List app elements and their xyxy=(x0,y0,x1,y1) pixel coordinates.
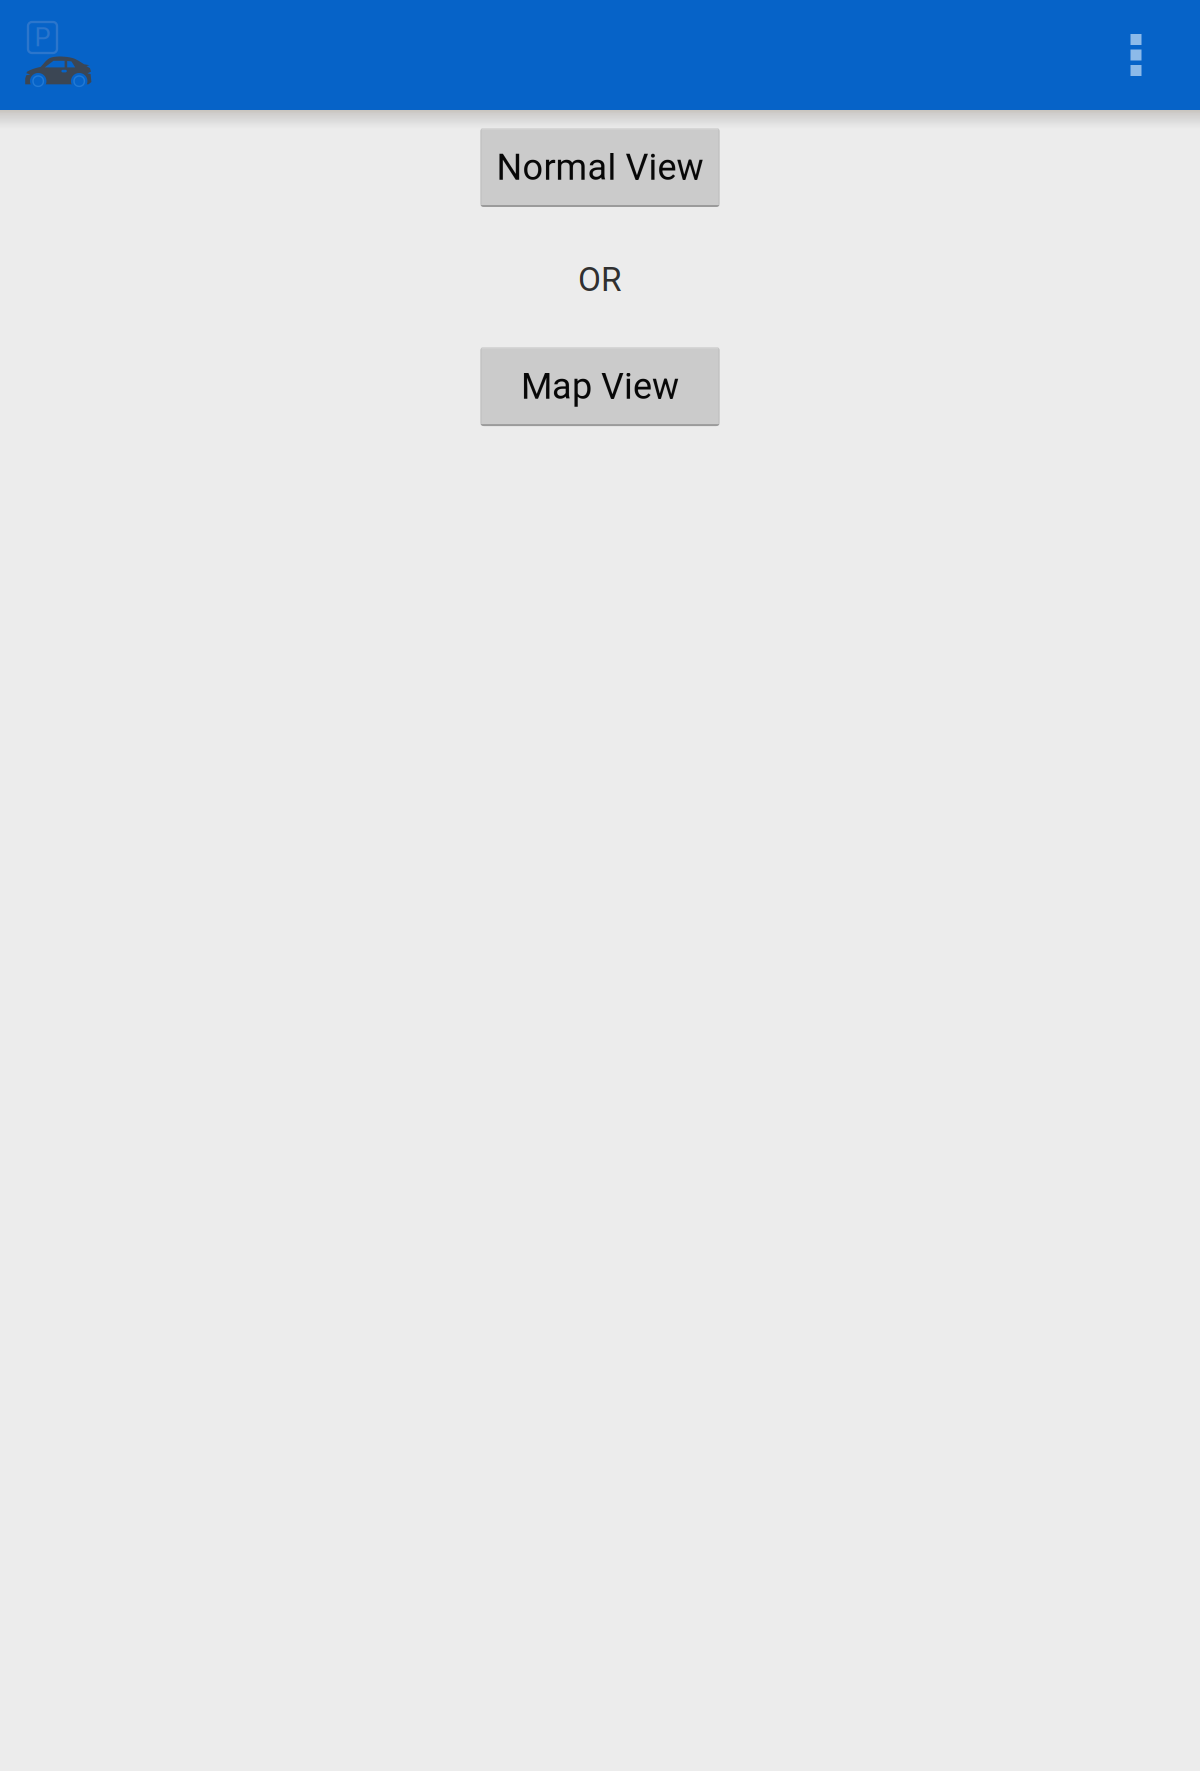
staticText: Normal View xyxy=(496,146,703,189)
staticText: Map View xyxy=(521,365,679,408)
button[interactable]: More options xyxy=(1090,0,1200,110)
staticText: P xyxy=(34,23,50,52)
staticText: OR xyxy=(578,260,622,299)
button[interactable]: Normal View xyxy=(480,128,719,207)
button[interactable]: Map View xyxy=(480,347,719,426)
